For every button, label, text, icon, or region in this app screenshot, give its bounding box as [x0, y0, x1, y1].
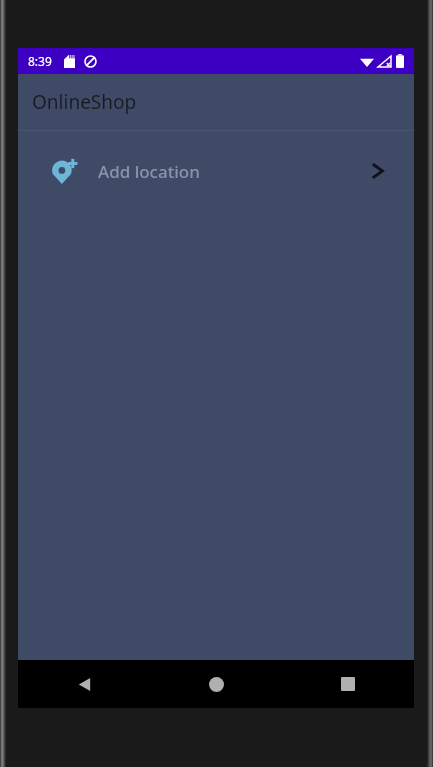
staticText: OnlineShop [32, 89, 137, 115]
button[interactable]: Back [18, 660, 150, 708]
staticText: Add location [98, 160, 200, 183]
button[interactable]: Recent apps [282, 660, 414, 708]
staticText: 8:39 [28, 53, 52, 69]
other: Open [368, 161, 388, 181]
button[interactable]: Home [150, 660, 282, 708]
button[interactable]: Add location [18, 147, 414, 195]
